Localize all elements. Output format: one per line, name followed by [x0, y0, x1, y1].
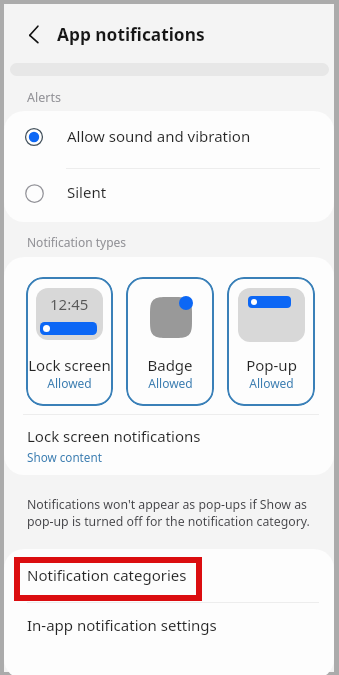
staticText: In-app notification settings: [27, 615, 217, 635]
button[interactable]: [4, 549, 334, 602]
staticText: Pop-up: [246, 355, 297, 375]
button[interactable]: [4, 168, 334, 222]
button[interactable]: [4, 415, 334, 475]
staticText: Notification categories: [27, 565, 187, 585]
button[interactable]: Badge: [126, 277, 214, 406]
staticText: Alerts: [27, 89, 61, 106]
staticText: Lock screen: [28, 355, 111, 375]
staticText: Notification types: [27, 234, 127, 250]
staticText: Allowed: [148, 375, 193, 391]
button[interactable]: 12:45: [26, 277, 113, 406]
button[interactable]: [4, 602, 334, 655]
staticText: Silent: [67, 182, 107, 202]
staticText: Show content: [27, 449, 102, 465]
staticText: App notifications: [57, 23, 205, 47]
button[interactable]: Back: [20, 20, 48, 48]
staticText: Allow sound and vibration: [67, 126, 251, 146]
staticText: Badge: [147, 355, 193, 375]
button[interactable]: [4, 111, 334, 168]
staticText: Allowed: [249, 375, 294, 391]
staticText: Notifications won't appear as pop-ups if…: [27, 496, 310, 529]
staticText: 12:45: [50, 294, 89, 314]
staticText: Lock screen notifications: [27, 426, 201, 446]
button[interactable]: Pop-up: [227, 277, 315, 406]
staticText: Allowed: [47, 375, 92, 391]
